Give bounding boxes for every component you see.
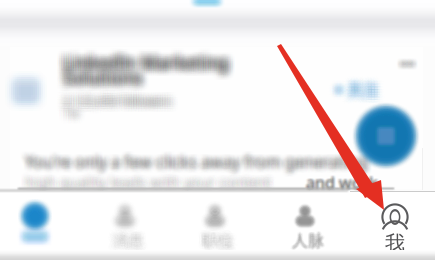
staticText: high quality leads with your content	[24, 177, 270, 196]
staticText: 1w	[63, 110, 79, 126]
staticText: 消息	[107, 231, 139, 251]
staticText: 消息	[114, 233, 146, 253]
staticText: + 关注	[331, 74, 376, 96]
staticText: + 关注	[328, 83, 373, 105]
staticText: LinkedIn Marketing	[59, 46, 225, 69]
staticText: 1w	[56, 108, 72, 124]
staticText: + 关注	[329, 83, 374, 105]
staticText: Solutions	[56, 69, 136, 92]
staticText: + 关注	[340, 76, 385, 97]
staticText: and work	[308, 172, 380, 194]
staticText: •••	[404, 56, 419, 72]
staticText: 职位	[201, 230, 233, 250]
staticText: high quality leads with your content	[26, 174, 272, 194]
staticText: 消息	[116, 233, 148, 253]
staticText: You're only a few clicks away from gener…	[30, 148, 373, 170]
staticText: LinkedIn Marketing	[66, 47, 232, 70]
staticText: 消息	[116, 227, 148, 247]
staticText: 消息	[108, 231, 140, 251]
staticText: •••	[396, 58, 411, 74]
staticText: 人脉	[290, 229, 322, 249]
button[interactable]: 职位	[170, 191, 260, 260]
staticText: Solutions	[70, 64, 150, 87]
staticText: Solutions	[59, 66, 139, 89]
staticText: high quality leads with your content	[26, 171, 272, 190]
staticText: You're only a few clicks away from gener…	[24, 151, 367, 172]
staticText: You're only a few clicks away from gener…	[29, 151, 372, 172]
staticText: 职位	[201, 233, 233, 253]
staticText: Solutions	[58, 71, 138, 94]
staticText: You're only a few clicks away from gener…	[26, 146, 369, 167]
staticText: 1w	[60, 102, 76, 117]
staticText: You're only a few clicks away from gener…	[27, 155, 370, 176]
button[interactable]: 消息	[80, 191, 170, 260]
staticText: + 关注	[334, 85, 379, 106]
staticText: high quality leads with your content	[20, 168, 266, 188]
staticText: 消息	[114, 236, 146, 256]
staticText: 人脉	[290, 229, 322, 248]
staticText: •••	[403, 54, 418, 70]
staticText: 1w	[60, 98, 76, 114]
staticText: Solutions	[68, 62, 148, 85]
staticText: LinkedIn Marketing	[65, 47, 231, 70]
staticText: 1w	[63, 107, 79, 123]
staticText: 2,123,456 followers	[65, 90, 174, 105]
staticText: You're only a few clicks away from gener…	[24, 155, 367, 176]
staticText: 1w	[63, 103, 79, 119]
staticText: high quality leads with your content	[26, 172, 272, 191]
staticText: 2,123,456 followers	[66, 95, 175, 111]
staticText: and work	[307, 171, 379, 192]
staticText: + 关注	[340, 77, 385, 99]
staticText: + 关注	[331, 85, 376, 106]
staticText: 2,123,456 followers	[58, 93, 167, 109]
staticText: 2,123,456 followers	[70, 96, 179, 112]
staticText: 人脉	[291, 229, 323, 248]
staticText: 人脉	[294, 233, 326, 253]
staticText: 人脉	[293, 233, 325, 253]
staticText: and work	[307, 170, 379, 192]
staticText: •••	[400, 53, 415, 69]
staticText: Solutions	[65, 69, 145, 92]
staticText: 2,123,456 followers	[65, 88, 174, 104]
button[interactable]: 首页	[0, 191, 80, 260]
staticText: You're only a few clicks away from gener…	[24, 146, 367, 167]
staticText: Solutions	[65, 71, 145, 94]
staticText: high quality leads with your content	[21, 173, 267, 193]
staticText: You're only a few clicks away from gener…	[29, 152, 372, 173]
staticText: 1w	[65, 110, 81, 126]
staticText: 人脉	[294, 229, 326, 248]
staticText: You're only a few clicks away from gener…	[25, 147, 368, 168]
staticText: LinkedIn Marketing	[66, 58, 232, 81]
staticText: LinkedIn Marketing	[59, 44, 225, 67]
staticText: and work	[306, 170, 378, 191]
staticText: You're only a few clicks away from gener…	[21, 152, 364, 173]
staticText: LinkedIn Marketing	[66, 56, 232, 79]
staticText: Solutions	[58, 59, 138, 82]
staticText: high quality leads with your content	[21, 172, 267, 191]
staticText: high quality leads with your content	[27, 176, 273, 195]
staticText: + 关注	[334, 74, 379, 96]
staticText: •••	[402, 60, 417, 76]
staticText: and work	[306, 172, 378, 194]
button[interactable]: 我	[350, 191, 435, 260]
staticText: and work	[306, 174, 378, 195]
staticText: + 关注	[332, 77, 377, 99]
staticText: LinkedIn Marketing	[63, 56, 229, 79]
staticText: 1w	[58, 107, 74, 123]
staticText: 2,123,456 followers	[58, 90, 167, 105]
staticText: + 关注	[340, 83, 385, 105]
staticText: and work	[308, 170, 380, 192]
staticText: high quality leads with your content	[25, 168, 271, 188]
staticText: and work	[305, 174, 377, 195]
staticText: 1w	[58, 100, 74, 116]
staticText: + 关注	[329, 76, 374, 97]
staticText: high quality leads with your content	[20, 169, 266, 189]
staticText: 人脉	[294, 231, 326, 251]
staticText: LinkedIn Marketing	[58, 49, 224, 72]
staticText: •••	[396, 55, 411, 71]
button[interactable]: 人脉	[260, 191, 350, 260]
staticText: LinkedIn Marketing	[65, 44, 231, 67]
staticText: 职位	[199, 227, 231, 247]
staticText: 2,123,456 followers	[65, 93, 174, 109]
staticText: 人脉	[291, 233, 323, 253]
